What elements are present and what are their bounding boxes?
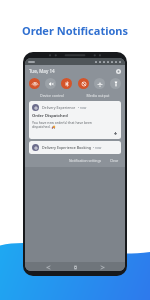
button[interactable]: Home — [71, 263, 79, 271]
staticText: • now — [78, 106, 87, 110]
button[interactable]: Delivery Experience — [29, 101, 121, 139]
button[interactable]: Notification settings — [67, 157, 104, 164]
button[interactable]: Auto rotate — [78, 78, 89, 89]
staticText: You have new order(s) that have been dis… — [32, 120, 92, 129]
staticText: Order Dispatched — [32, 113, 68, 119]
staticText: Delivery Experience Booking — [42, 145, 91, 150]
button[interactable]: Wi-Fi — [29, 78, 40, 89]
button[interactable]: Clear — [108, 157, 121, 164]
staticText: Order Notifications — [0, 23, 150, 38]
button[interactable]: Media output — [75, 93, 121, 98]
button[interactable]: Delivery Experience Booking — [29, 141, 121, 154]
button[interactable]: Recent apps — [98, 263, 106, 271]
button[interactable]: Bluetooth — [61, 78, 72, 89]
button[interactable]: Collapse notification — [113, 131, 118, 136]
button[interactable]: Sound off — [45, 78, 56, 89]
staticText: Delivery Experience — [42, 105, 76, 110]
staticText: • now — [93, 146, 102, 150]
button[interactable]: Flashlight — [110, 78, 121, 89]
staticText: Tue, May 14 — [29, 68, 55, 74]
button[interactable]: Airplane mode — [94, 78, 105, 89]
button[interactable]: Device control — [29, 93, 75, 98]
button[interactable]: Settings — [115, 68, 121, 74]
button[interactable]: Back — [44, 263, 52, 271]
